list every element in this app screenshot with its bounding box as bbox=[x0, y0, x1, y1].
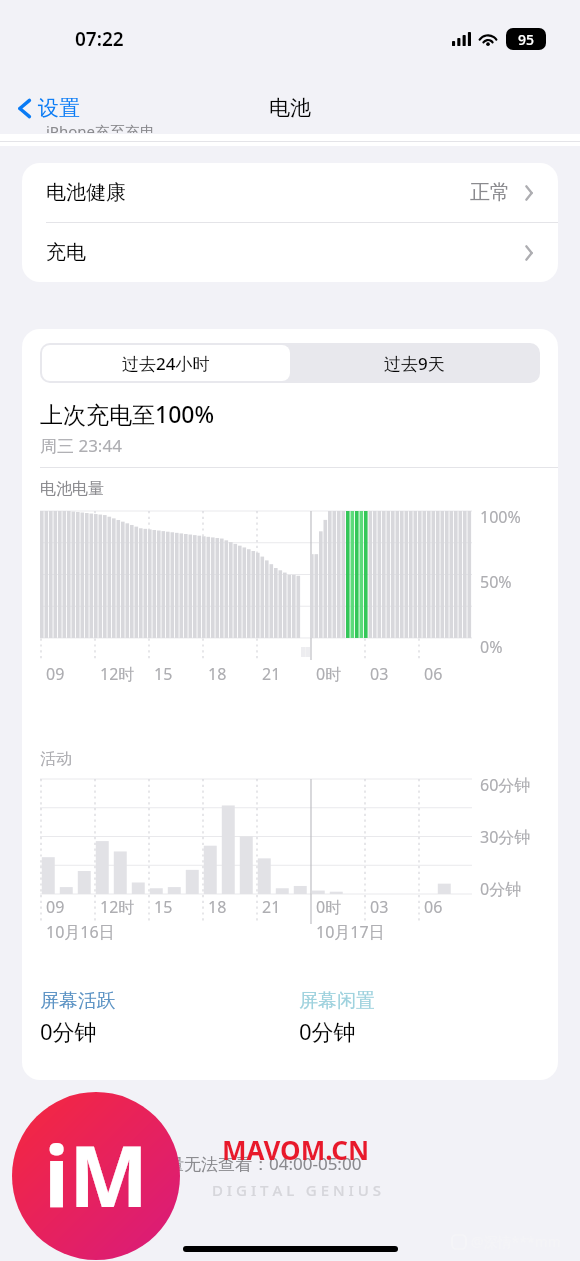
staticText: 21 bbox=[262, 663, 281, 685]
staticText: D I G I T A L G E N I U S bbox=[212, 1180, 381, 1200]
button[interactable]: 设置 bbox=[12, 91, 86, 125]
staticText: 过去24小时 bbox=[122, 352, 210, 375]
staticText: 周三 23:44 bbox=[40, 434, 122, 457]
button[interactable]: 电池健康 bbox=[22, 163, 558, 222]
staticText: 0时 bbox=[316, 896, 342, 918]
staticText: 07:22 bbox=[75, 26, 124, 52]
staticText: 正常 bbox=[470, 180, 510, 205]
staticText: 过去9天 bbox=[384, 352, 445, 375]
staticText: 10月17日 bbox=[316, 921, 385, 943]
staticText: 电池 bbox=[269, 95, 311, 121]
staticText: 06 bbox=[424, 663, 443, 685]
staticText: 15 bbox=[154, 896, 173, 918]
staticText: 充电 bbox=[46, 240, 86, 265]
staticText: 12时 bbox=[100, 896, 135, 918]
staticText: 10月16日 bbox=[46, 921, 115, 943]
staticText: 电池健康 bbox=[46, 180, 126, 205]
staticText: 设置 bbox=[38, 95, 80, 121]
staticText: 0分钟 bbox=[299, 1016, 356, 1046]
staticText: 15 bbox=[154, 663, 173, 685]
staticText: 09 bbox=[46, 663, 65, 685]
staticText: 09 bbox=[46, 896, 65, 918]
staticText: 06 bbox=[424, 896, 443, 918]
staticText: 上次充电至100% bbox=[40, 398, 215, 429]
staticText: 100% bbox=[480, 506, 521, 528]
staticText: 30分钟 bbox=[480, 826, 531, 848]
staticText: 12时 bbox=[100, 663, 135, 685]
staticText: 用量无法查看：04:00-05:00 bbox=[150, 1152, 362, 1175]
staticText: 电池电量 bbox=[40, 479, 104, 499]
staticText: 0时 bbox=[316, 663, 342, 685]
staticText: 60分钟 bbox=[480, 774, 531, 796]
staticText: 0分钟 bbox=[480, 878, 522, 900]
staticText: 0% bbox=[480, 636, 503, 658]
button[interactable]: 充电 bbox=[22, 223, 558, 282]
button[interactable]: 过去9天 bbox=[290, 345, 538, 381]
staticText: iPhone充至充电。 bbox=[46, 121, 171, 133]
staticText: 屏幕活跃 bbox=[40, 989, 116, 1013]
staticText: 18 bbox=[208, 663, 227, 685]
staticText: 21 bbox=[262, 896, 281, 918]
staticText: 活动 bbox=[40, 749, 72, 769]
staticText: 0分钟 bbox=[40, 1016, 97, 1046]
staticText: 屏幕闲置 bbox=[299, 989, 375, 1013]
staticText: 03 bbox=[370, 663, 389, 685]
staticText: MAVOM.CN bbox=[222, 1132, 370, 1167]
staticText: 95 bbox=[518, 30, 535, 49]
staticText: 50% bbox=[480, 571, 512, 593]
button[interactable]: 过去24小时 bbox=[42, 345, 290, 381]
staticText: 03 bbox=[370, 896, 389, 918]
staticText: iM bbox=[44, 1117, 149, 1231]
staticText: 18 bbox=[208, 896, 227, 918]
